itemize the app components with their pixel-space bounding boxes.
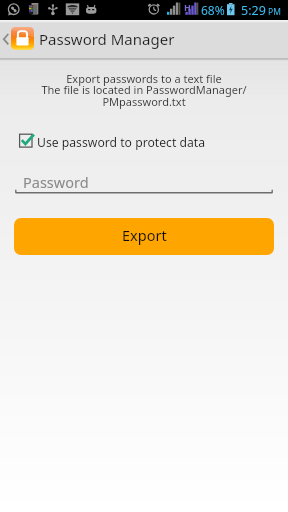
staticText: Use password to protect data <box>37 134 206 151</box>
button[interactable]: Export <box>14 218 274 255</box>
button[interactable]: Navigate up <box>0 20 11 58</box>
staticText: H <box>184 1 191 13</box>
staticText: Password <box>23 172 89 192</box>
staticText: Export passwords to a text file The file… <box>0 71 288 109</box>
button[interactable]: Password <box>15 167 273 194</box>
button[interactable]: Use password to protect data <box>17 131 206 151</box>
staticText: 68% <box>201 2 225 18</box>
staticText: Password Manager <box>39 29 175 49</box>
staticText: PM <box>268 6 281 18</box>
staticText: 5:29 <box>241 2 266 19</box>
staticText: Export <box>122 225 167 245</box>
